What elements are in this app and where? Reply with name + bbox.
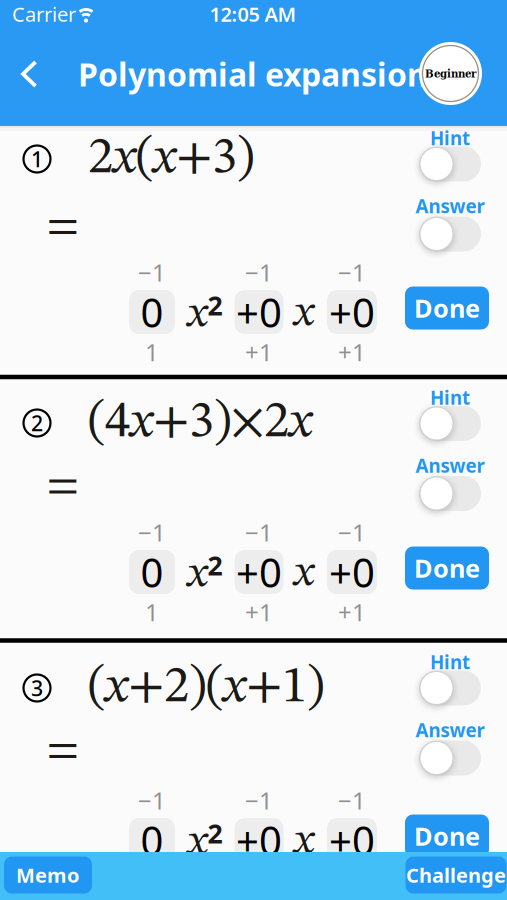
staticText: = bbox=[46, 728, 79, 774]
staticText: Beginner bbox=[425, 67, 476, 80]
button[interactable]: Challenge bbox=[405, 856, 506, 893]
button[interactable]: −1 bbox=[338, 784, 366, 816]
button[interactable]: −1 bbox=[138, 256, 166, 288]
staticText: 2x(x+3) bbox=[88, 134, 254, 184]
staticText: Answer bbox=[415, 194, 484, 218]
staticText: 3 bbox=[31, 674, 43, 702]
staticText: x bbox=[294, 820, 314, 864]
button[interactable]: Hint bbox=[419, 670, 481, 705]
button[interactable]: Done bbox=[405, 286, 489, 329]
staticText: −1 bbox=[338, 784, 366, 816]
button[interactable]: −1 bbox=[245, 256, 273, 288]
staticText: 1 bbox=[31, 145, 43, 173]
button[interactable]: +1 bbox=[245, 596, 273, 628]
staticText: +0 bbox=[236, 813, 282, 866]
staticText: Done bbox=[414, 291, 480, 325]
staticText: 0 bbox=[140, 545, 163, 598]
staticText: +0 bbox=[329, 813, 375, 866]
button[interactable]: −1 bbox=[245, 516, 273, 548]
button[interactable]: Done bbox=[405, 814, 489, 857]
staticText: 2 bbox=[31, 409, 43, 437]
staticText: x2 bbox=[187, 287, 222, 336]
staticText: +0 bbox=[329, 545, 375, 598]
staticText: (4x+3)×2x bbox=[88, 398, 312, 448]
staticText: = bbox=[46, 464, 79, 509]
button[interactable]: 1 bbox=[145, 596, 159, 628]
staticText: −1 bbox=[138, 516, 166, 548]
staticText: x2 bbox=[187, 547, 222, 596]
button[interactable]: −1 bbox=[245, 784, 273, 816]
button[interactable]: Back bbox=[20, 60, 38, 87]
staticText: −1 bbox=[245, 516, 273, 548]
button[interactable]: −1 bbox=[138, 516, 166, 548]
button[interactable]: −1 bbox=[138, 784, 166, 816]
button[interactable]: Answer bbox=[419, 216, 481, 251]
button[interactable]: Done bbox=[405, 546, 489, 589]
staticText: (x+2)(x+1) bbox=[88, 663, 324, 713]
staticText: −1 bbox=[245, 256, 273, 288]
staticText: 0 bbox=[140, 813, 163, 866]
button[interactable]: Memo bbox=[4, 856, 92, 893]
staticText: −1 bbox=[338, 256, 366, 288]
staticText: Carrier bbox=[12, 1, 76, 27]
button[interactable]: +1 bbox=[245, 336, 273, 368]
button[interactable]: +1 bbox=[338, 336, 366, 368]
staticText: 0 bbox=[140, 285, 163, 338]
staticText: +0 bbox=[236, 285, 282, 338]
staticText: −1 bbox=[138, 784, 166, 816]
button[interactable]: −1 bbox=[338, 256, 366, 288]
staticText: Hint bbox=[430, 385, 470, 410]
staticText: 1 bbox=[145, 596, 159, 628]
staticText: +1 bbox=[338, 336, 366, 368]
button[interactable]: Answer bbox=[419, 740, 481, 775]
staticText: Done bbox=[414, 551, 480, 585]
staticText: +0 bbox=[329, 285, 375, 338]
button[interactable]: +1 bbox=[338, 596, 366, 628]
staticText: = bbox=[46, 204, 79, 250]
staticText: −1 bbox=[338, 516, 366, 548]
staticText: +0 bbox=[236, 545, 282, 598]
button[interactable]: Hint bbox=[419, 406, 481, 441]
staticText: 1 bbox=[145, 336, 159, 368]
staticText: x bbox=[294, 292, 314, 336]
button[interactable]: 1 bbox=[145, 336, 159, 368]
staticText: +1 bbox=[245, 596, 273, 628]
button[interactable]: Answer bbox=[419, 476, 481, 511]
staticText: +1 bbox=[338, 596, 366, 628]
staticText: Challenge bbox=[406, 862, 506, 888]
button[interactable]: Beginner level bbox=[419, 42, 482, 105]
staticText: 12:05 AM bbox=[209, 1, 296, 27]
staticText: Done bbox=[414, 819, 480, 853]
staticText: Answer bbox=[415, 453, 484, 478]
staticText: Memo bbox=[16, 862, 80, 888]
staticText: −1 bbox=[245, 784, 273, 816]
staticText: x2 bbox=[187, 815, 222, 864]
staticText: Hint bbox=[430, 126, 470, 150]
staticText: Answer bbox=[415, 718, 484, 742]
staticText: −1 bbox=[138, 256, 166, 288]
staticText: x bbox=[294, 552, 314, 596]
staticText: Polynomial expansion bbox=[78, 53, 428, 95]
staticText: Hint bbox=[430, 650, 470, 674]
button[interactable]: Hint bbox=[419, 146, 481, 181]
button[interactable]: −1 bbox=[338, 516, 366, 548]
staticText: +1 bbox=[245, 336, 273, 368]
